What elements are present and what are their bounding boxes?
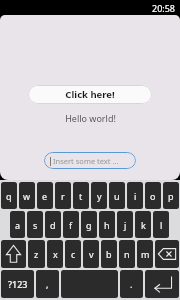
- staticText: Insert some text ...: [53, 156, 119, 166]
- button[interactable]: .: [120, 270, 143, 298]
- staticText: ,: [46, 278, 49, 290]
- staticText: y: [97, 190, 102, 202]
- button[interactable]: Space: [61, 270, 118, 298]
- button[interactable]: a: [10, 211, 25, 238]
- staticText: j: [124, 219, 127, 231]
- staticText: u: [114, 190, 120, 202]
- button[interactable]: r: [55, 182, 71, 209]
- button[interactable]: z: [28, 240, 45, 268]
- staticText: n: [124, 248, 130, 260]
- staticText: m: [141, 248, 150, 260]
- staticText: t: [79, 190, 83, 202]
- staticText: z: [34, 248, 39, 260]
- staticText: c: [71, 248, 76, 260]
- button[interactable]: i: [127, 182, 143, 209]
- button[interactable]: j: [117, 211, 133, 238]
- staticText: h: [104, 219, 110, 231]
- button[interactable]: g: [81, 211, 97, 238]
- button[interactable]: Insert some text ...: [44, 152, 136, 169]
- button[interactable]: l: [153, 211, 169, 238]
- button[interactable]: c: [65, 240, 81, 268]
- staticText: g: [86, 219, 92, 231]
- button[interactable]: h: [99, 211, 115, 238]
- button[interactable]: s: [27, 211, 43, 238]
- staticText: s: [33, 219, 38, 231]
- staticText: l: [160, 219, 163, 231]
- staticText: e: [42, 190, 48, 202]
- button[interactable]: f: [63, 211, 79, 238]
- button[interactable]: ?123: [1, 270, 34, 298]
- button[interactable]: t: [73, 182, 89, 209]
- staticText: b: [106, 248, 112, 260]
- staticText: .: [130, 278, 133, 290]
- button[interactable]: x: [47, 240, 63, 268]
- staticText: p: [168, 190, 174, 202]
- staticText: k: [141, 219, 146, 231]
- staticText: d: [50, 219, 56, 231]
- button[interactable]: Click here!: [28, 85, 152, 104]
- staticText: ?123: [8, 278, 28, 290]
- button[interactable]: ,: [36, 270, 59, 298]
- staticText: Click here!: [65, 88, 115, 101]
- staticText: i: [134, 190, 137, 202]
- button[interactable]: e: [37, 182, 53, 209]
- button[interactable]: b: [101, 240, 117, 268]
- button[interactable]: q: [1, 182, 17, 209]
- button[interactable]: o: [145, 182, 161, 209]
- staticText: x: [53, 248, 58, 260]
- staticText: w: [23, 190, 31, 202]
- staticText: Hello world!: [65, 112, 116, 124]
- button[interactable]: Shift: [1, 240, 26, 268]
- button[interactable]: d: [45, 211, 61, 238]
- staticText: q: [6, 190, 12, 202]
- button[interactable]: v: [83, 240, 99, 268]
- button[interactable]: u: [109, 182, 125, 209]
- button[interactable]: m: [137, 240, 153, 268]
- button[interactable]: y: [91, 182, 107, 209]
- button[interactable]: n: [119, 240, 135, 268]
- button[interactable]: k: [135, 211, 151, 238]
- staticText: 20:58: [152, 2, 176, 14]
- staticText: a: [15, 219, 21, 231]
- staticText: r: [61, 190, 65, 202]
- staticText: v: [89, 248, 94, 260]
- button[interactable]: Enter: [145, 270, 179, 298]
- button[interactable]: w: [19, 182, 35, 209]
- button[interactable]: Backspace: [155, 240, 179, 268]
- staticText: o: [150, 190, 156, 202]
- staticText: f: [69, 219, 73, 231]
- button[interactable]: p: [163, 182, 179, 209]
